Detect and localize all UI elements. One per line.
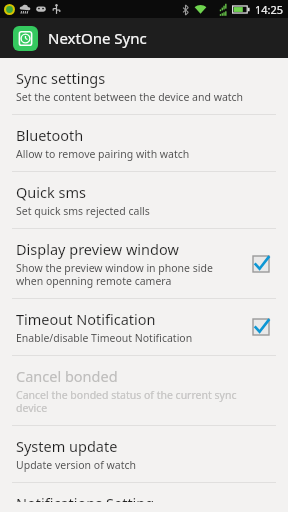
button[interactable]: Bluetooth [0, 115, 288, 171]
staticText: Set the content between the device and w… [16, 90, 244, 104]
staticText: Set quick sms rejected calls [16, 204, 150, 218]
button[interactable]: Notifications Setting [0, 483, 288, 512]
staticText: Notifications Setting [16, 493, 155, 502]
staticText: Display preview window [16, 239, 179, 259]
button[interactable]: Timeout Notification [246, 312, 276, 342]
button[interactable]: Quick sms [0, 172, 288, 228]
staticText: Cancel the bonded status of the current … [16, 388, 237, 415]
button[interactable]: Sync settings [0, 58, 288, 114]
staticText: System update [16, 436, 118, 456]
staticText: Cancel bonded [16, 366, 118, 386]
staticText: 14:25 [255, 2, 284, 17]
staticText: Bluetooth [16, 125, 84, 145]
staticText: Show the preview window in phone side wh… [16, 261, 213, 288]
staticText: Sync settings [16, 68, 106, 88]
staticText: NextOne Sync [48, 28, 147, 48]
staticText: Enable/disable Timeout Notification [16, 331, 193, 345]
button[interactable]: NextOne Sync [0, 18, 288, 58]
button[interactable]: System update [0, 426, 288, 482]
staticText: Quick sms [16, 182, 86, 202]
staticText: Update version of watch [16, 458, 136, 472]
staticText: Allow to remove pairing with watch [16, 147, 190, 161]
button[interactable]: Timeout Notification [0, 299, 288, 355]
button[interactable]: Display preview window [246, 249, 276, 279]
button[interactable]: Display preview window [0, 229, 288, 298]
staticText: Timeout Notification [16, 309, 156, 329]
button[interactable]: Cancel bonded [0, 356, 288, 425]
